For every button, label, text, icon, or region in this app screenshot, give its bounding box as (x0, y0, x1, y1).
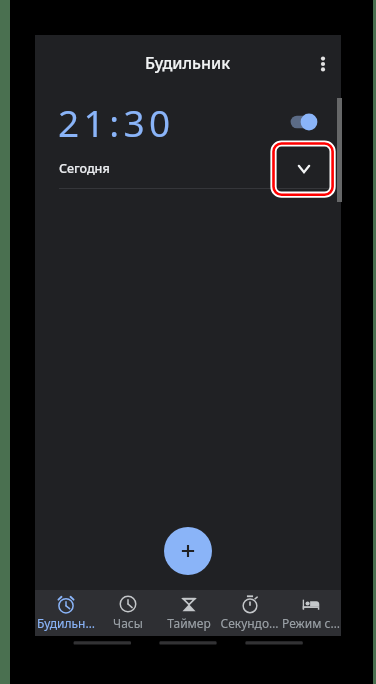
button[interactable]: Таймер (158, 590, 219, 636)
staticText: Часы (113, 615, 143, 631)
button[interactable]: Секундо… (219, 590, 280, 636)
button[interactable]: Toggle alarm (286, 105, 322, 139)
staticText: Секундо… (220, 615, 279, 631)
button[interactable]: Будильн… (35, 590, 97, 636)
button[interactable]: Часы (97, 590, 158, 636)
staticText: Режим с… (282, 615, 340, 631)
button[interactable]: More options (306, 47, 340, 81)
staticText: Сегодня (59, 160, 110, 177)
button[interactable]: Add alarm (164, 527, 212, 575)
staticText: 21:30 (58, 97, 175, 147)
button[interactable]: Режим с… (280, 590, 341, 636)
staticText: Таймер (167, 615, 211, 631)
staticText: Будильн… (37, 615, 95, 631)
button[interactable]: Expand alarm (286, 151, 322, 187)
staticText: Будильник (145, 52, 231, 74)
